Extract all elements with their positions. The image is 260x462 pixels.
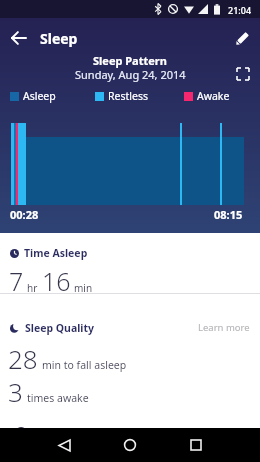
staticText: Restless <box>108 89 148 103</box>
staticText: 00:28 <box>10 207 39 222</box>
button[interactable]: Learn more <box>198 321 250 334</box>
staticText: min <box>74 281 93 295</box>
button[interactable] <box>40 428 88 462</box>
staticText: Time Asleep <box>24 246 88 260</box>
button[interactable] <box>106 428 154 462</box>
staticText: min to fall asleep <box>42 358 127 372</box>
staticText: hr <box>27 281 38 295</box>
staticText: 21:04 <box>228 4 252 16</box>
button[interactable]: Sleep Quality <box>10 321 95 335</box>
button[interactable] <box>233 64 253 84</box>
staticText: 16 <box>42 264 71 298</box>
button[interactable]: Time Asleep <box>10 246 88 260</box>
button[interactable] <box>6 25 32 51</box>
staticText: 08:15 <box>214 207 243 222</box>
staticText: 9 <box>14 417 29 452</box>
button[interactable] <box>172 428 220 462</box>
staticText: 7 <box>9 264 24 298</box>
button[interactable] <box>230 27 254 51</box>
staticText: 3 <box>8 374 23 409</box>
staticText: Asleep <box>23 89 56 103</box>
staticText: Sleep Quality <box>25 321 95 335</box>
staticText: 28 <box>8 341 38 376</box>
staticText: Awake <box>197 89 230 103</box>
staticText: times awake <box>27 391 89 405</box>
staticText: Sleep Pattern <box>93 53 167 68</box>
staticText: Sunday, Aug 24, 2014 <box>75 67 186 82</box>
staticText: Sleep <box>40 29 78 48</box>
